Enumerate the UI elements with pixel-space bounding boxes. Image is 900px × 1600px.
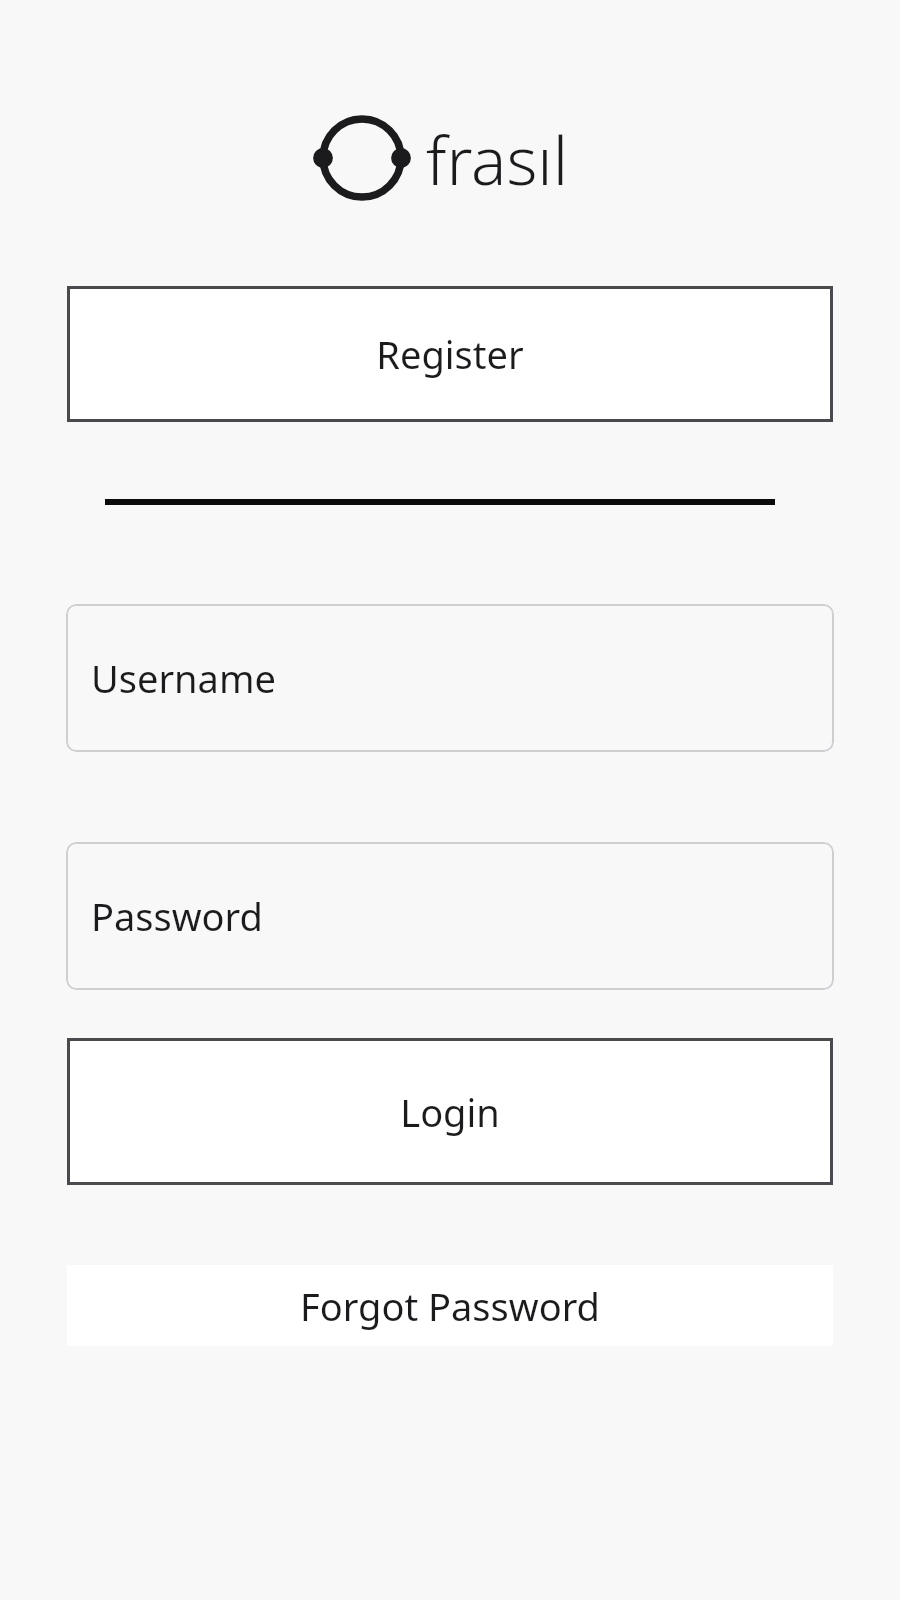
staticText: Forgot Password bbox=[300, 1280, 600, 1332]
staticText: frasıl bbox=[426, 114, 568, 204]
staticText: Login bbox=[400, 1086, 500, 1138]
staticText: Register bbox=[376, 328, 524, 380]
button[interactable]: Username bbox=[66, 604, 834, 752]
button[interactable]: Password bbox=[66, 842, 834, 990]
staticText: Password bbox=[91, 890, 263, 942]
other: Frasil logo bbox=[310, 105, 590, 210]
staticText: Username bbox=[91, 652, 276, 704]
button[interactable]: Login bbox=[67, 1038, 833, 1185]
button[interactable]: Forgot Password bbox=[67, 1265, 833, 1346]
button[interactable]: Register bbox=[67, 286, 833, 422]
